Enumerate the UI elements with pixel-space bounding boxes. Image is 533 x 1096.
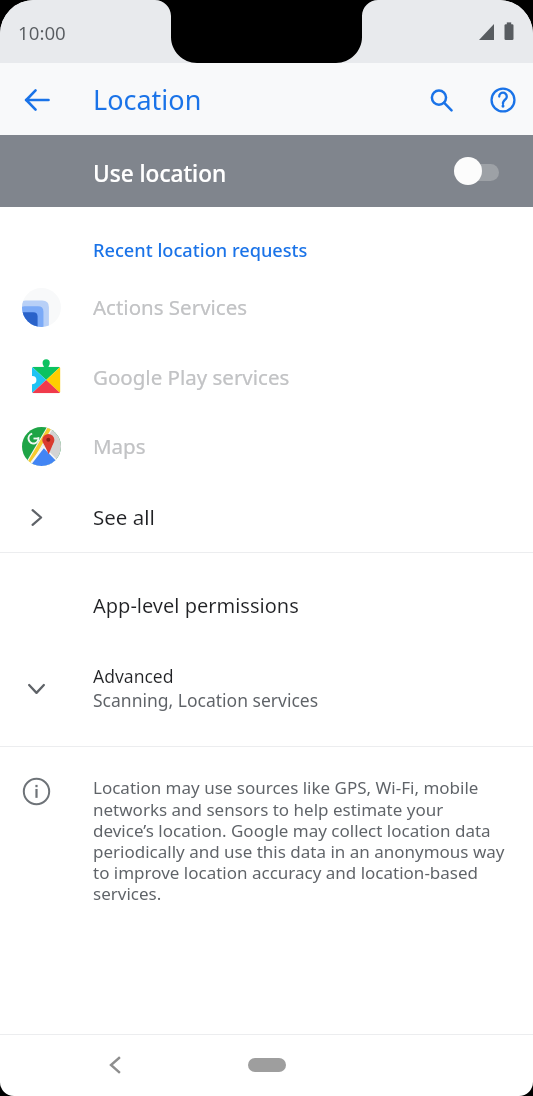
- button[interactable]: App-level permissions: [0, 560, 533, 650]
- staticText: Maps: [93, 432, 146, 460]
- staticText: App-level permissions: [93, 592, 299, 619]
- button[interactable]: Maps: [0, 412, 533, 481]
- button[interactable]: Navigate up: [10, 73, 63, 126]
- staticText: Scanning, Location services: [93, 688, 319, 712]
- button[interactable]: Actions Services: [0, 273, 533, 342]
- button[interactable]: Back: [95, 1045, 135, 1085]
- staticText: Actions Services: [93, 293, 248, 321]
- staticText: Advanced: [93, 664, 174, 688]
- staticText: Google Play services: [93, 363, 290, 391]
- button[interactable]: Help: [476, 73, 529, 126]
- button[interactable]: Search: [414, 73, 467, 126]
- button[interactable]: Recent location requests: [0, 207, 533, 273]
- button[interactable]: Use location: [0, 135, 533, 207]
- button[interactable]: Google Play services: [0, 343, 533, 412]
- button[interactable]: Home: [237, 1048, 296, 1082]
- staticText: Recent location requests: [93, 238, 308, 263]
- staticText: 10:00: [18, 20, 66, 45]
- staticText: Use location: [93, 158, 227, 189]
- staticText: Location may use sources like GPS, Wi-Fi…: [93, 776, 505, 905]
- staticText: See all: [93, 503, 155, 531]
- button[interactable]: Advanced: [0, 659, 533, 721]
- button[interactable]: See all: [0, 483, 533, 552]
- staticText: Location: [93, 81, 202, 118]
